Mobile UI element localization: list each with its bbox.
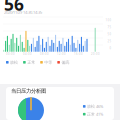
staticText: 16:00 <box>74 52 83 56</box>
staticText: 0 <box>109 46 111 50</box>
staticText: 75 <box>107 25 111 29</box>
staticText: 2020/11/29 14:30-14:35 <box>4 9 42 15</box>
staticText: 20:00 <box>91 52 100 56</box>
staticText: 08:00 <box>40 52 49 56</box>
staticText: 04:00 <box>23 52 32 56</box>
button[interactable]: 当日压力分析图 <box>6 87 114 120</box>
staticText: 100 <box>105 18 111 22</box>
staticText: 25 <box>107 39 111 43</box>
staticText: 放松 <box>10 60 18 65</box>
staticText: 放松 46% <box>87 104 103 109</box>
staticText: 56 <box>4 0 24 15</box>
staticText: 当日压力分析图 <box>11 88 46 94</box>
staticText: 偏高 <box>61 60 69 65</box>
staticText: 正常 41% <box>87 111 103 117</box>
staticText: 00:00 <box>6 52 15 56</box>
staticText: 中等 <box>44 60 52 65</box>
staticText: 正常 <box>27 60 35 65</box>
staticText: 50 <box>107 32 111 36</box>
staticText: 12:00 <box>57 52 66 56</box>
